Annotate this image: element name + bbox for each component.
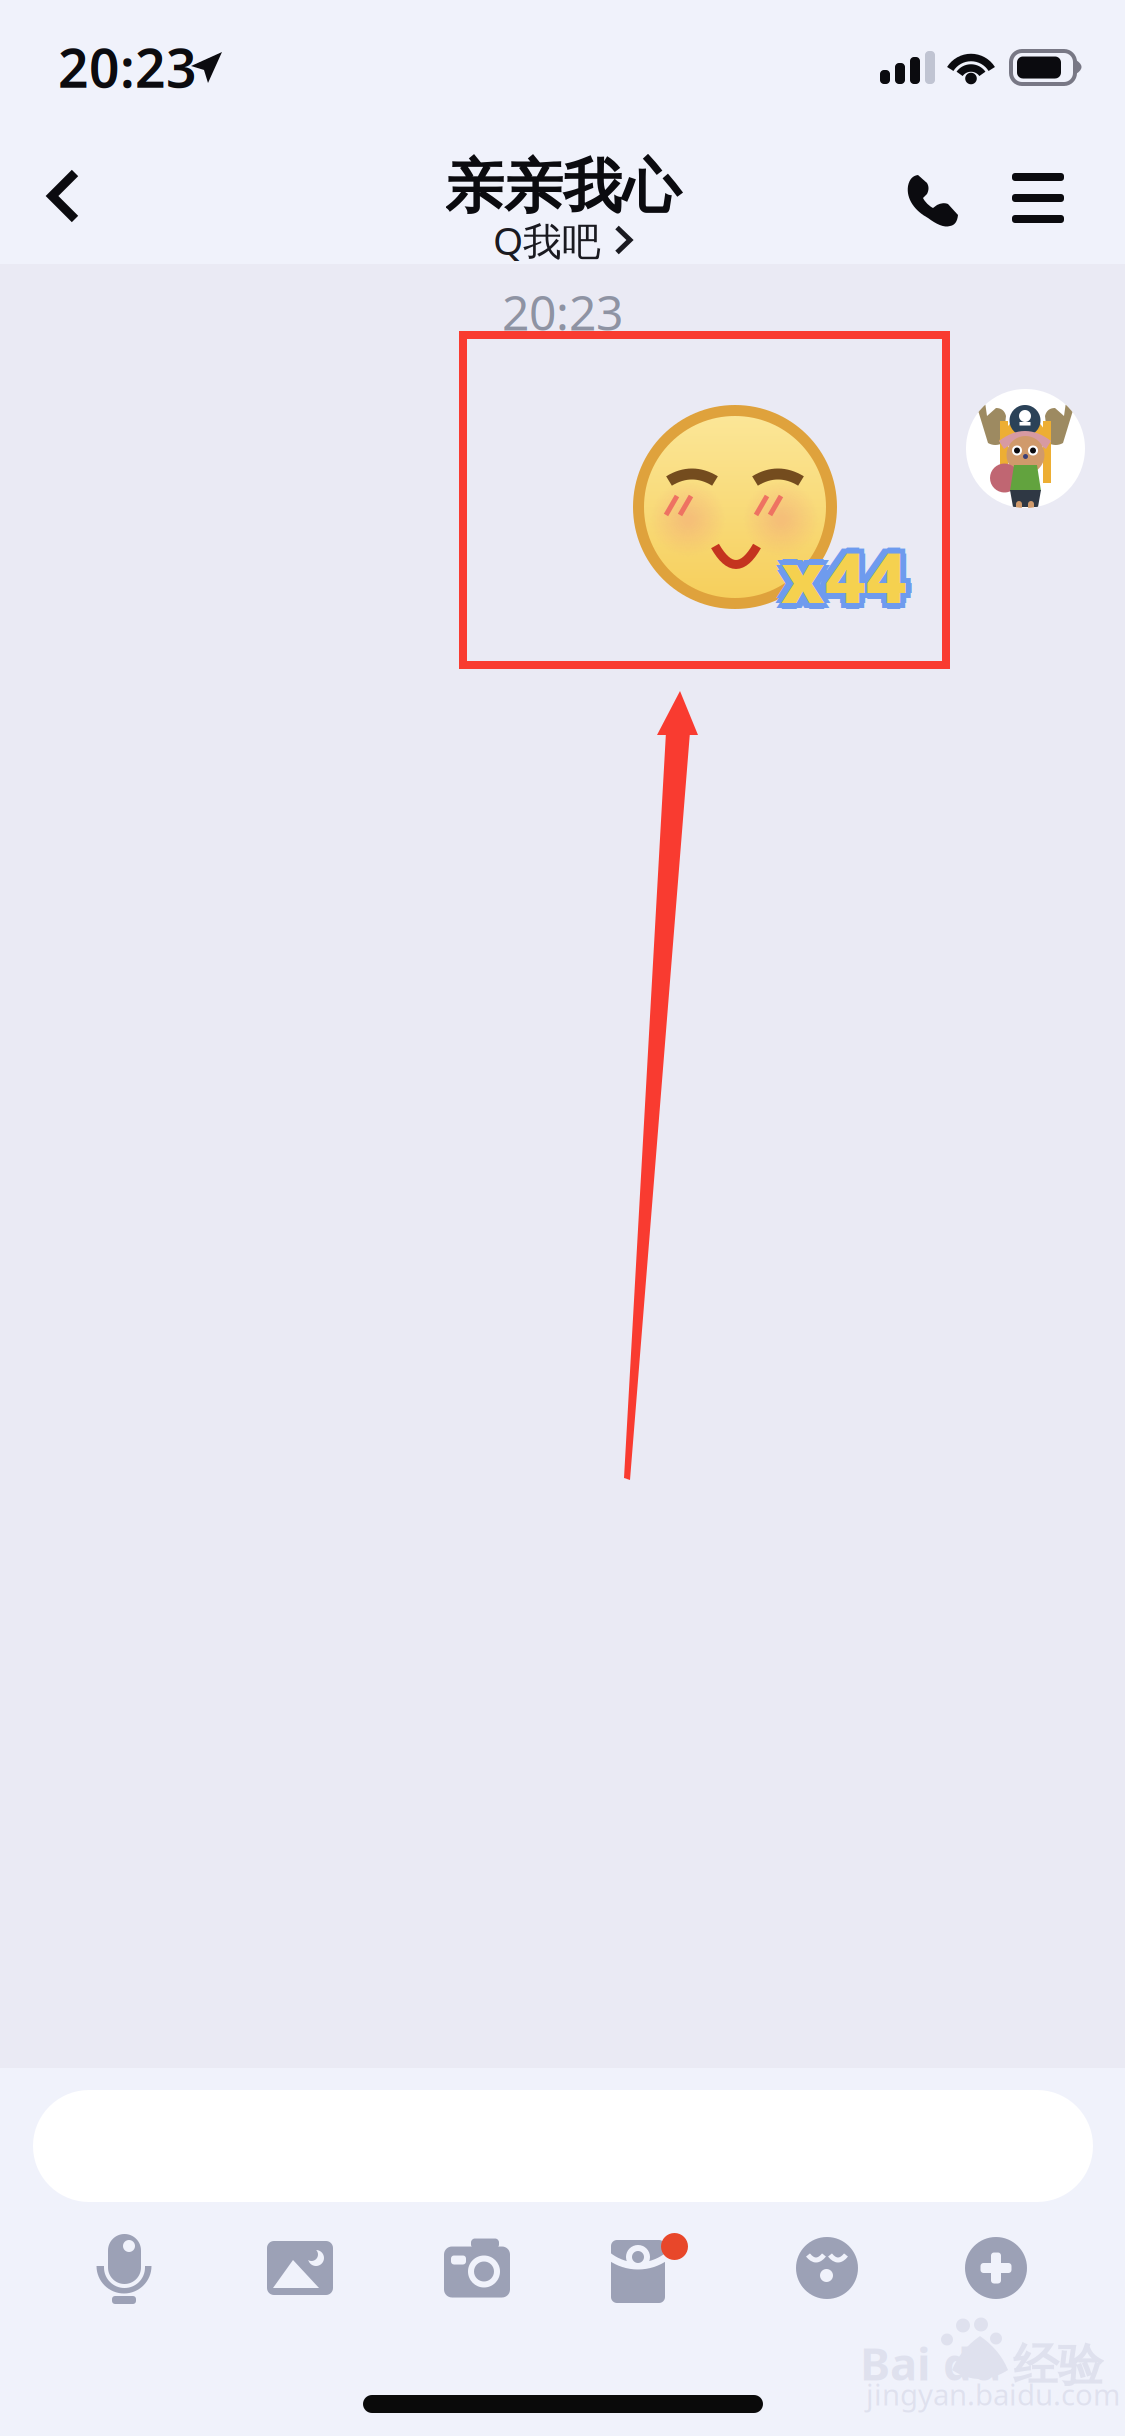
staticText: 亲亲我心 [445,151,681,223]
button[interactable]: 亲亲我心 [343,152,783,264]
staticText: x44 [781,530,907,622]
button[interactable]: Photos [225,2208,375,2328]
button[interactable]: Camera [402,2208,552,2328]
staticText: x44 [775,530,901,622]
staticText: Q我吧 [493,214,601,266]
button[interactable]: Voice message [49,2208,199,2328]
button[interactable]: Back [12,144,116,248]
staticText: x44 [781,524,907,616]
button[interactable]: Call [883,149,983,253]
button[interactable]: Contact avatar [966,389,1085,508]
button[interactable]: More [921,2208,1071,2328]
staticText: 20:23 [502,280,623,344]
staticText: 20:23 [58,32,197,102]
staticText: x44 [781,536,907,628]
staticText: Bai du 经验 [860,2333,1103,2393]
staticText: jingyan.baidu.com [866,2374,1120,2413]
staticText: x44 [786,535,912,627]
button[interactable]: Sticker x44 [459,331,950,669]
staticText: x44 [787,530,913,622]
button[interactable]: Emoji [752,2208,902,2328]
staticText: x44 [776,535,902,627]
button[interactable]: Menu [988,146,1088,250]
button[interactable]: Red packet [576,2208,726,2328]
staticText: x44 [786,525,912,617]
staticText: x44 [776,525,902,617]
